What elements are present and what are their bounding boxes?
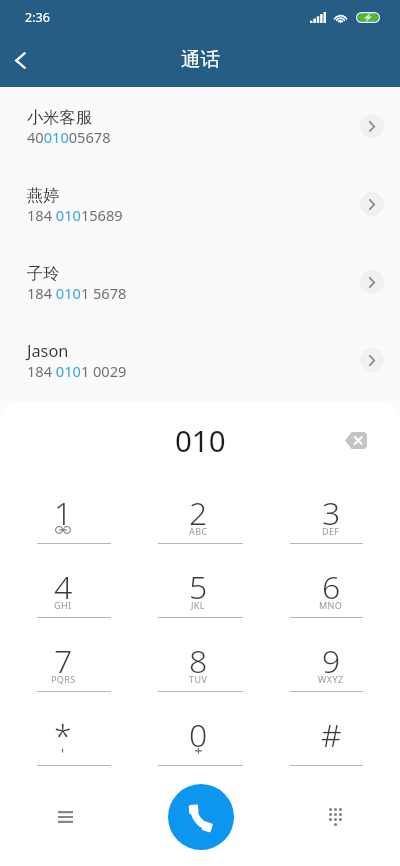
staticText: 1 xyxy=(54,491,73,535)
button[interactable]: 5 xyxy=(138,544,258,618)
staticText: 3 xyxy=(322,491,341,535)
button[interactable]: 8 xyxy=(138,618,258,692)
staticText: 8 xyxy=(189,639,208,683)
button[interactable]: 小米客服 xyxy=(0,87,400,165)
staticText: DEF xyxy=(322,525,340,537)
staticText: GHI xyxy=(54,599,72,611)
button[interactable]: * xyxy=(3,692,123,766)
staticText: ABC xyxy=(189,525,208,537)
staticText: # xyxy=(321,713,342,757)
staticText: * xyxy=(54,713,72,757)
button[interactable]: 9 xyxy=(271,618,391,692)
staticText: 燕婷 xyxy=(27,185,60,206)
staticText: 小米客服 xyxy=(27,107,93,128)
staticText: PQRS xyxy=(51,673,76,685)
staticText: JKL xyxy=(191,599,205,611)
button[interactable]: Menu xyxy=(43,795,87,839)
button[interactable]: 6 xyxy=(271,544,391,618)
button[interactable]: 0 xyxy=(138,692,258,766)
button[interactable]: 7 xyxy=(3,618,123,692)
staticText: 4001005678 xyxy=(27,127,111,147)
button[interactable]: 3 xyxy=(271,470,391,544)
button[interactable]: # xyxy=(271,692,391,766)
staticText: 184 0101 5678 xyxy=(27,283,127,303)
staticText: 子玲 xyxy=(27,263,60,284)
button[interactable]: 1 xyxy=(3,470,123,544)
staticText: 通话 xyxy=(181,47,220,72)
button[interactable]: 燕婷 xyxy=(0,165,400,243)
button[interactable]: 子玲 xyxy=(0,243,400,321)
staticText: TUV xyxy=(189,673,208,685)
button[interactable]: Backspace xyxy=(336,420,376,460)
button[interactable]: Jason xyxy=(0,321,400,399)
staticText: 5 xyxy=(189,565,208,609)
staticText: 2:36 xyxy=(25,9,50,26)
staticText: Jason xyxy=(27,340,69,362)
staticText: MNO xyxy=(319,599,343,611)
staticText: WXYZ xyxy=(318,673,344,685)
staticText: 010 xyxy=(175,420,226,460)
button[interactable]: 2 xyxy=(138,470,258,544)
staticText: 184 0101 0029 xyxy=(27,361,127,381)
staticText: 0 xyxy=(189,713,208,757)
button[interactable]: Details xyxy=(360,348,384,372)
button[interactable]: 4 xyxy=(3,544,123,618)
staticText: 4 xyxy=(54,565,73,609)
staticText: 6 xyxy=(322,565,341,609)
button[interactable]: Details xyxy=(360,192,384,216)
staticText: 184 01015689 xyxy=(27,205,123,225)
button[interactable]: Dialpad xyxy=(313,795,357,839)
button[interactable]: Back xyxy=(0,33,41,87)
staticText: 2 xyxy=(189,491,208,535)
button[interactable]: Details xyxy=(360,114,384,138)
button[interactable]: Details xyxy=(360,270,384,294)
staticText: 9 xyxy=(322,639,341,683)
staticText: 7 xyxy=(54,639,73,683)
button[interactable]: Call xyxy=(168,784,234,850)
